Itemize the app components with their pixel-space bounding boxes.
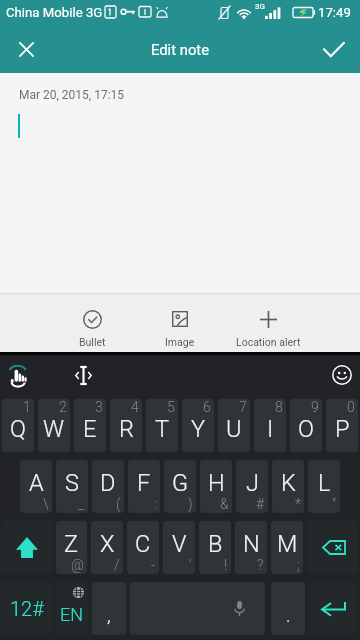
staticText: * bbox=[295, 496, 301, 512]
staticText: C bbox=[135, 530, 151, 558]
staticText: X bbox=[100, 530, 115, 558]
button[interactable]: F bbox=[128, 460, 160, 513]
button[interactable]: Close bbox=[6, 29, 46, 69]
staticText: 1 bbox=[23, 399, 31, 415]
button[interactable]: Location alert bbox=[224, 294, 312, 352]
staticText: . bbox=[286, 604, 291, 626]
staticText: 8 bbox=[275, 399, 283, 415]
staticText: 4 bbox=[131, 399, 139, 415]
staticText: 0 bbox=[347, 399, 355, 415]
staticText: 12# bbox=[10, 597, 44, 620]
staticText: V bbox=[172, 530, 187, 558]
staticText: S bbox=[65, 469, 79, 497]
staticText: _ bbox=[78, 496, 85, 512]
staticText: I bbox=[267, 415, 274, 443]
staticText: ) bbox=[188, 496, 193, 512]
button[interactable]: S bbox=[56, 460, 88, 513]
staticText: N bbox=[243, 530, 260, 558]
button[interactable]: Image bbox=[136, 294, 224, 352]
staticText: & bbox=[220, 496, 229, 512]
staticText: ' bbox=[189, 557, 192, 573]
staticText: 9 bbox=[311, 399, 319, 415]
button[interactable]: N bbox=[235, 521, 267, 574]
staticText: Q bbox=[10, 415, 26, 443]
button[interactable]: Space bbox=[130, 582, 265, 635]
staticText: 7 bbox=[239, 399, 247, 415]
button[interactable]: Bullet bbox=[48, 294, 136, 352]
button[interactable]: B bbox=[199, 521, 231, 574]
button[interactable]: Symbols bbox=[1, 582, 53, 635]
staticText: ; bbox=[297, 557, 300, 573]
button[interactable]: W bbox=[38, 399, 70, 452]
button[interactable]: . bbox=[271, 582, 305, 635]
button[interactable]: , bbox=[92, 582, 126, 635]
button[interactable]: J bbox=[236, 460, 268, 513]
button[interactable]: Cursor control bbox=[65, 357, 101, 393]
staticText: Z bbox=[64, 530, 79, 558]
button[interactable]: Save note bbox=[314, 29, 354, 69]
staticText: # bbox=[256, 496, 265, 512]
staticText: Edit note bbox=[151, 41, 210, 58]
staticText: W bbox=[43, 415, 65, 443]
button[interactable]: I bbox=[254, 399, 286, 452]
staticText: U bbox=[226, 415, 242, 443]
button[interactable]: U bbox=[218, 399, 250, 452]
staticText: Location alert bbox=[236, 336, 301, 348]
button[interactable]: E bbox=[74, 399, 106, 452]
staticText: Y bbox=[191, 415, 206, 443]
staticText: 3 bbox=[95, 399, 103, 415]
staticText: H bbox=[208, 469, 225, 497]
button[interactable]: Language bbox=[56, 582, 88, 635]
staticText: R bbox=[119, 415, 134, 443]
staticText: @ bbox=[71, 557, 84, 573]
button[interactable]: Backspace bbox=[307, 521, 358, 574]
button[interactable]: Y bbox=[182, 399, 214, 452]
staticText: 3G bbox=[255, 2, 265, 11]
button[interactable]: Z bbox=[56, 521, 87, 574]
button[interactable]: O bbox=[290, 399, 322, 452]
staticText: ! bbox=[224, 557, 228, 573]
staticText: T bbox=[155, 415, 170, 443]
button[interactable]: Emoji bbox=[324, 357, 360, 393]
staticText: ? bbox=[257, 557, 264, 573]
staticText: O bbox=[298, 415, 314, 443]
button[interactable]: R bbox=[110, 399, 142, 452]
staticText: China Mobile 3G bbox=[6, 5, 103, 20]
staticText: 6 bbox=[203, 399, 211, 415]
button[interactable]: L bbox=[308, 460, 340, 513]
staticText: Mar 20, 2015, 17:15 bbox=[19, 88, 125, 102]
button[interactable]: P bbox=[326, 399, 358, 452]
button[interactable]: Q bbox=[2, 399, 34, 452]
button[interactable]: Gesture typing bbox=[0, 358, 36, 394]
button[interactable]: M bbox=[271, 521, 303, 574]
staticText: Image bbox=[165, 336, 195, 348]
staticText: B bbox=[208, 530, 223, 558]
staticText: M bbox=[277, 530, 298, 558]
button[interactable]: D bbox=[92, 460, 124, 513]
staticText: J bbox=[246, 469, 259, 497]
staticText: Bullet bbox=[79, 336, 106, 348]
staticText: ( bbox=[116, 496, 121, 512]
button[interactable]: X bbox=[91, 521, 123, 574]
staticText: P bbox=[335, 415, 350, 443]
button[interactable]: A bbox=[20, 460, 52, 513]
staticText: , bbox=[107, 604, 111, 626]
staticText: L bbox=[318, 469, 331, 497]
staticText: 17:49 bbox=[318, 5, 351, 20]
staticText: 2 bbox=[59, 399, 67, 415]
button[interactable]: H bbox=[200, 460, 232, 513]
staticText: E bbox=[83, 415, 97, 443]
staticText: D bbox=[100, 469, 116, 497]
button[interactable]: Enter bbox=[308, 582, 357, 635]
button[interactable]: C bbox=[127, 521, 159, 574]
button[interactable]: K bbox=[272, 460, 304, 513]
staticText: K bbox=[281, 469, 296, 497]
staticText: " bbox=[332, 496, 337, 512]
staticText: A bbox=[29, 469, 44, 497]
button[interactable]: G bbox=[164, 460, 196, 513]
button[interactable]: T bbox=[146, 399, 178, 452]
button[interactable]: V bbox=[163, 521, 195, 574]
button[interactable]: Shift bbox=[1, 521, 53, 574]
staticText: 5 bbox=[167, 399, 175, 415]
staticText: EN bbox=[60, 604, 84, 625]
